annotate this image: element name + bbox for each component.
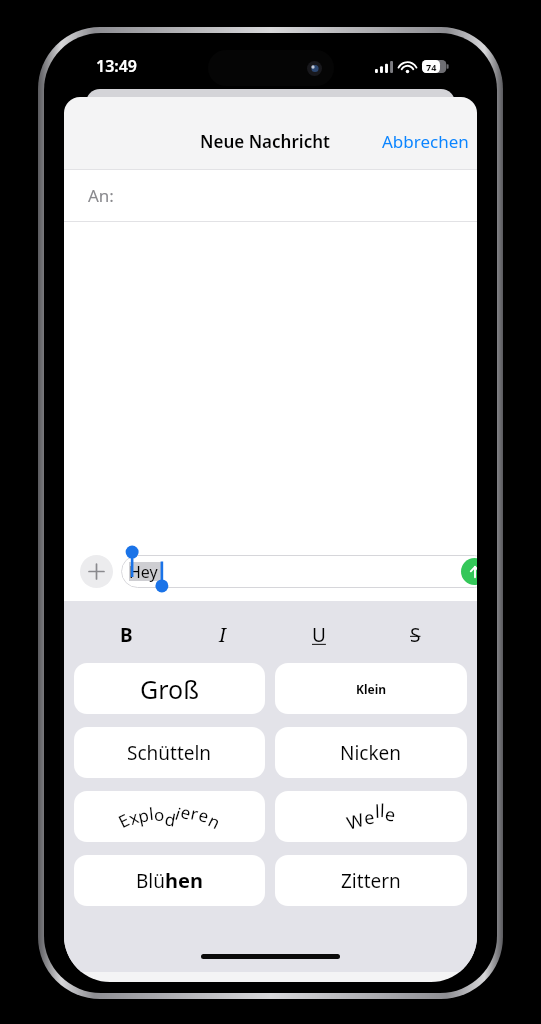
- staticText: An:: [88, 184, 114, 207]
- staticText: Blü: [136, 868, 165, 894]
- button[interactable]: W: [275, 791, 467, 842]
- button[interactable]: Durchgestrichen: [380, 616, 450, 654]
- staticText: Klein: [356, 681, 387, 697]
- button[interactable]: Fett: [91, 616, 161, 654]
- staticText: e: [362, 804, 377, 831]
- button[interactable]: An:: [64, 170, 477, 221]
- staticText: Nicken: [340, 740, 402, 766]
- button[interactable]: Kursiv: [187, 616, 257, 654]
- button[interactable]: Hey: [121, 555, 477, 588]
- staticText: l: [380, 798, 385, 823]
- button[interactable]: Schütteln: [74, 727, 265, 778]
- staticText: l: [148, 802, 155, 825]
- button[interactable]: Abbrechen: [374, 124, 477, 159]
- staticText: W: [344, 807, 367, 836]
- button[interactable]: Nicken: [275, 727, 467, 778]
- button[interactable]: Hinzufügen: [80, 555, 113, 588]
- staticText: e: [178, 800, 194, 825]
- staticText: U: [312, 622, 326, 648]
- staticText: E: [114, 808, 134, 833]
- staticText: r: [189, 801, 201, 826]
- staticText: B: [120, 622, 133, 648]
- staticText: x: [125, 805, 142, 830]
- staticText: p: [136, 803, 151, 828]
- staticText: e: [383, 801, 398, 828]
- staticText: o: [154, 803, 165, 826]
- staticText: d: [163, 807, 178, 832]
- button[interactable]: Zittern: [275, 855, 467, 906]
- staticText: I: [219, 622, 226, 648]
- staticText: Neue Nachricht: [200, 130, 330, 153]
- button[interactable]: Groß: [74, 663, 265, 714]
- button[interactable]: Blü: [74, 855, 265, 906]
- staticText: Zittern: [341, 868, 401, 894]
- staticText: 74: [426, 61, 437, 73]
- staticText: e: [196, 803, 212, 828]
- staticText: l: [375, 799, 380, 824]
- button[interactable]: Klein: [275, 663, 467, 714]
- button[interactable]: Unterstrichen: [284, 616, 354, 654]
- staticText: Hey: [129, 561, 158, 583]
- staticText: 13:49: [96, 55, 138, 77]
- button[interactable]: Senden: [461, 558, 477, 585]
- staticText: Groß: [140, 672, 199, 706]
- staticText: Abbrechen: [382, 130, 469, 153]
- button[interactable]: E: [74, 791, 265, 842]
- staticText: n: [204, 809, 224, 834]
- staticText: hen: [165, 867, 203, 894]
- staticText: i: [173, 802, 184, 825]
- staticText: Schütteln: [127, 740, 212, 766]
- staticText: S: [410, 622, 421, 648]
